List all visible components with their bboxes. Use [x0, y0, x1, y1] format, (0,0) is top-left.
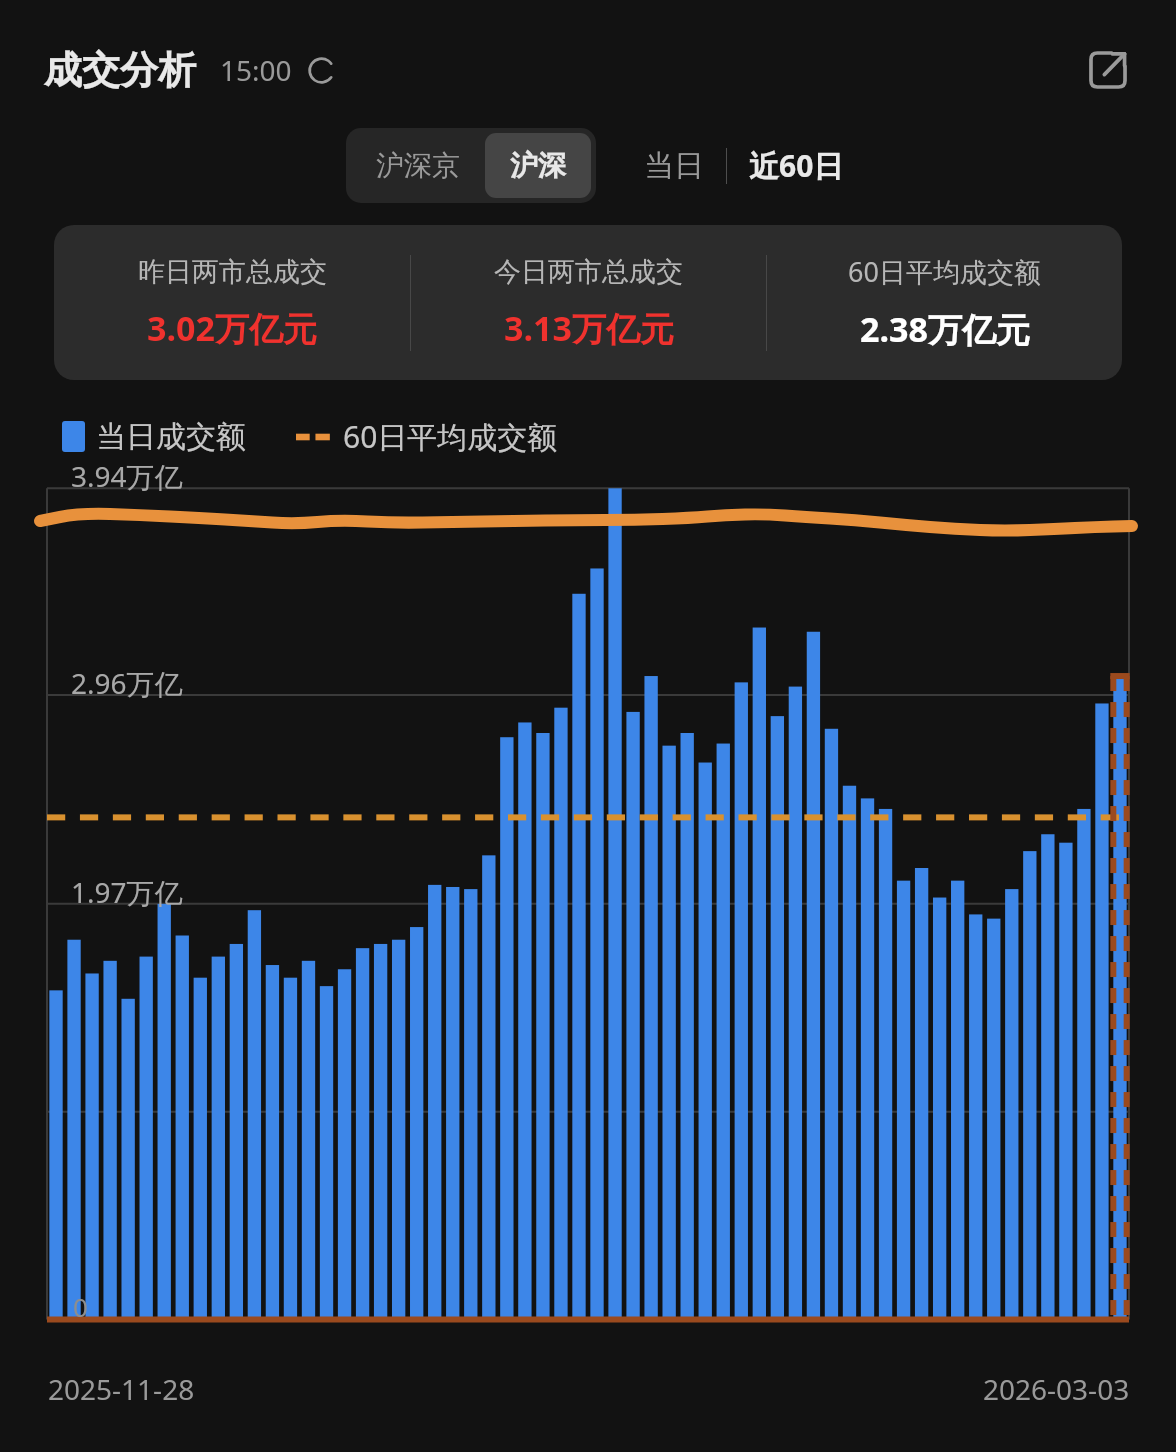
staticText: 当日	[644, 147, 704, 185]
staticText: 60日平均成交额	[343, 416, 558, 457]
staticText: 沪深	[510, 148, 566, 183]
staticText: 2.96万亿	[71, 664, 183, 702]
button[interactable]: 今日两市总成交	[411, 255, 766, 351]
staticText: 成交分析	[44, 46, 196, 94]
button[interactable]: 昨日两市总成交	[54, 255, 410, 351]
button[interactable]: Refresh	[304, 53, 338, 87]
staticText: 2.38万亿元	[860, 306, 1030, 352]
button[interactable]: 沪深京	[351, 133, 485, 198]
staticText: 15:00	[220, 51, 292, 89]
staticText: 1.97万亿	[71, 873, 183, 911]
staticText: 近60日	[749, 145, 844, 186]
staticText: 3.02万亿元	[147, 305, 317, 351]
button[interactable]: 近60日	[741, 133, 852, 198]
button[interactable]: 沪深	[485, 133, 591, 198]
button[interactable]: 60日平均成交额	[767, 253, 1122, 352]
staticText: 3.13万亿元	[504, 305, 674, 351]
staticText: 昨日两市总成交	[138, 255, 327, 289]
button[interactable]: 当日	[636, 135, 712, 197]
staticText: 2025-11-28	[48, 1370, 195, 1408]
button[interactable]: Share	[1072, 34, 1144, 106]
staticText: 60日平均成交额	[848, 253, 1041, 290]
staticText: 0	[73, 1289, 88, 1324]
staticText: 3.94万亿	[71, 457, 183, 495]
staticText: 2026-03-03	[983, 1370, 1130, 1408]
staticText: 今日两市总成交	[494, 255, 683, 289]
staticText: 沪深京	[376, 148, 460, 183]
staticText: 当日成交额	[96, 418, 246, 456]
